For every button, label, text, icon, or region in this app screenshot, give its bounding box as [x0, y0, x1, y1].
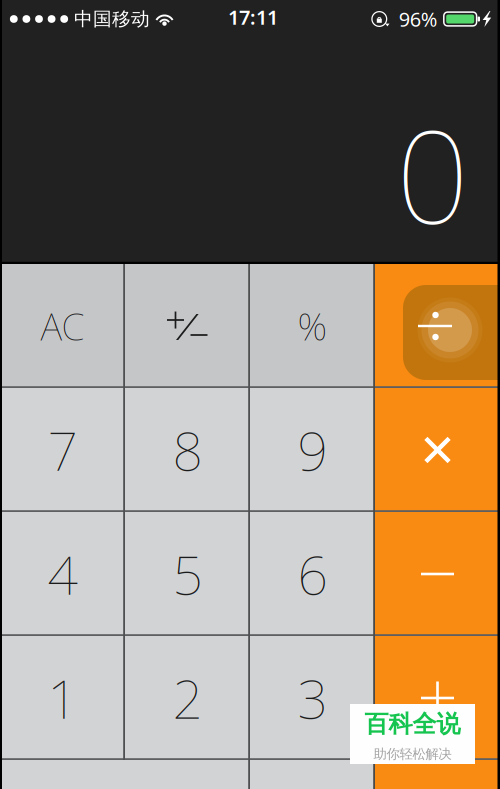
staticText: 助你轻松解决 [373, 746, 451, 762]
button[interactable]: Divide [375, 264, 500, 388]
staticText: 4 [47, 539, 77, 609]
button[interactable]: 2 [125, 636, 250, 760]
staticText: 8 [172, 415, 202, 485]
button[interactable]: Equals [375, 760, 500, 789]
staticText: AC [40, 301, 84, 351]
button[interactable] [250, 760, 375, 789]
button[interactable]: 6 [250, 512, 375, 636]
button[interactable]: Subtract [375, 512, 500, 636]
staticText: 7 [47, 415, 77, 485]
staticText: 3 [297, 663, 327, 733]
button[interactable]: % [250, 264, 375, 388]
staticText: 1 [47, 663, 77, 733]
staticText: 17:11 [228, 4, 278, 30]
staticText: 5 [172, 539, 202, 609]
staticText: 2 [172, 663, 202, 733]
staticText: 96% [399, 6, 438, 32]
button[interactable]: Plus Minus [125, 264, 250, 388]
button[interactable]: 9 [250, 388, 375, 512]
button[interactable]: AC [0, 264, 125, 388]
button[interactable]: 8 [125, 388, 250, 512]
button[interactable]: 7 [0, 388, 125, 512]
button[interactable] [0, 760, 250, 789]
staticText: 0 [396, 89, 469, 259]
button[interactable]: Multiply [375, 388, 500, 512]
staticText: 6 [297, 539, 327, 609]
staticText: 百科全说 [364, 709, 460, 739]
button[interactable]: 4 [0, 512, 125, 636]
button[interactable]: 3 [250, 636, 375, 760]
staticText: 中国移动 [74, 7, 150, 30]
staticText: % [297, 301, 327, 351]
button[interactable]: 5 [125, 512, 250, 636]
button[interactable]: 1 [0, 636, 125, 760]
button[interactable]: Add [375, 636, 500, 760]
staticText: 9 [297, 415, 327, 485]
